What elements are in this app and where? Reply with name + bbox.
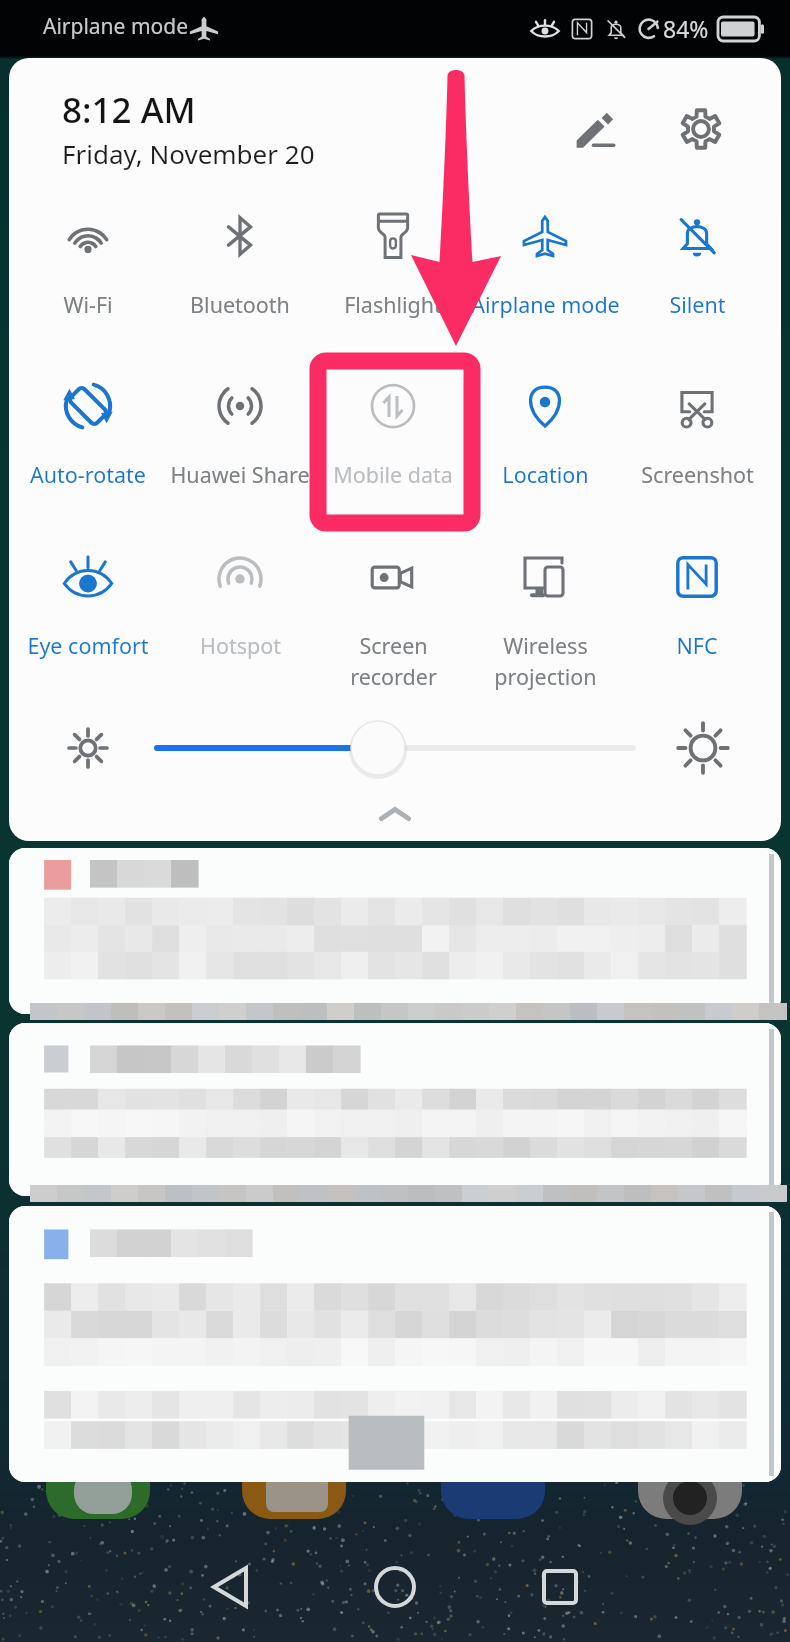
button[interactable]: Edit quick settings (555, 89, 635, 169)
staticText: 8:12 AM (62, 86, 196, 134)
button[interactable] (469, 525, 621, 675)
button[interactable] (9, 1206, 781, 1482)
button[interactable] (164, 354, 316, 504)
button[interactable] (164, 184, 316, 334)
button[interactable] (12, 525, 164, 675)
button[interactable]: Brightness (149, 718, 659, 778)
button[interactable]: Home (355, 1547, 435, 1627)
button[interactable] (316, 184, 468, 334)
button[interactable]: Settings (661, 89, 741, 169)
button[interactable]: Decrease brightness (52, 712, 124, 784)
staticText: Auto-rotate (30, 460, 146, 489)
button[interactable] (12, 354, 164, 504)
button[interactable] (621, 525, 773, 675)
staticText: Wireless projection (494, 631, 597, 692)
staticText: 84% (663, 13, 709, 44)
button[interactable]: Collapse panel (360, 790, 430, 838)
button[interactable]: Back (190, 1547, 270, 1627)
button[interactable] (469, 354, 621, 504)
button[interactable] (9, 1023, 781, 1196)
button[interactable] (316, 525, 468, 675)
staticText: Hotspot (200, 631, 281, 660)
staticText: Airplane mode (471, 290, 620, 319)
staticText: Mobile data (333, 460, 453, 489)
staticText: Airplane mode (43, 12, 189, 41)
button[interactable] (9, 848, 781, 1014)
button[interactable] (316, 354, 468, 504)
staticText: Eye comfort (27, 631, 149, 660)
button[interactable] (164, 525, 316, 675)
button[interactable] (621, 354, 773, 504)
button[interactable]: Recent apps (520, 1547, 600, 1627)
staticText: Silent (669, 290, 726, 319)
staticText: Flashlight (344, 290, 442, 319)
staticText: Wi-Fi (63, 290, 113, 319)
staticText: Screen recorder (350, 631, 437, 692)
staticText: Bluetooth (190, 290, 290, 319)
button[interactable]: Increase brightness (663, 708, 743, 788)
button[interactable] (469, 184, 621, 334)
staticText: Screenshot (641, 460, 754, 489)
staticText: Location (502, 460, 589, 489)
staticText: Friday, November 20 (62, 136, 315, 171)
button[interactable] (12, 184, 164, 334)
staticText: Huawei Share (170, 460, 310, 489)
button[interactable] (621, 184, 773, 334)
staticText: NFC (676, 631, 718, 660)
